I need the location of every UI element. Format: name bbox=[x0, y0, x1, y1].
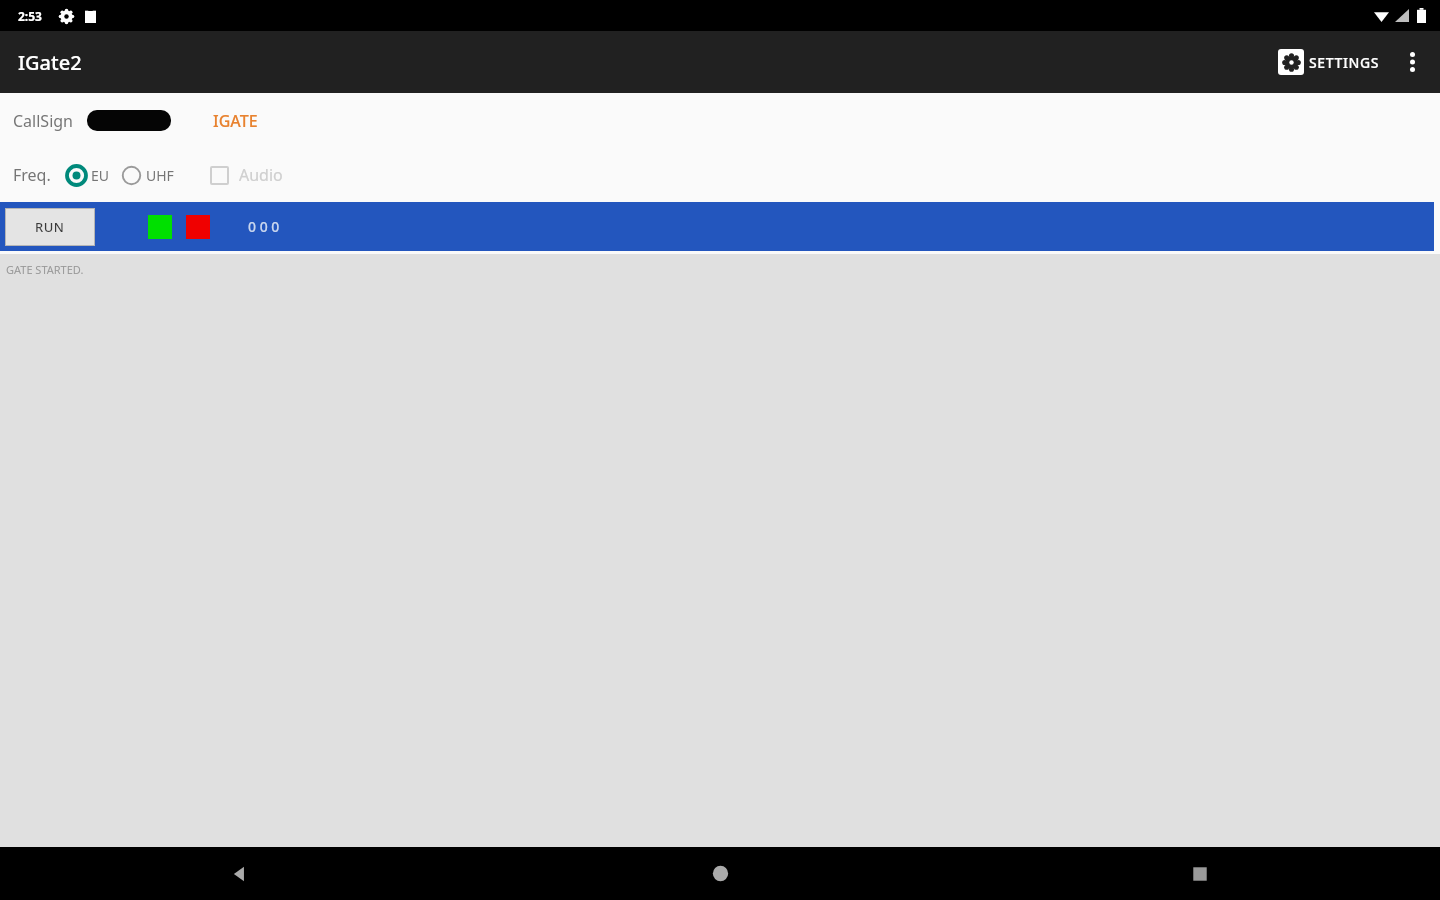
staticText: CallSign bbox=[13, 110, 73, 132]
staticText: 0 0 0 bbox=[248, 217, 280, 236]
staticText: 2:53 bbox=[18, 8, 42, 24]
button[interactable]: EU bbox=[65, 162, 112, 189]
staticText: UHF bbox=[146, 166, 174, 185]
staticText: RUN bbox=[35, 218, 65, 236]
staticText: GATE STARTED. bbox=[6, 262, 84, 277]
staticText: Audio bbox=[239, 164, 283, 186]
button[interactable]: Audio bbox=[206, 160, 287, 190]
button[interactable]: Home bbox=[480, 847, 960, 900]
button[interactable]: Back bbox=[0, 847, 480, 900]
button[interactable]: Recents bbox=[960, 847, 1440, 900]
staticText: IGate2 bbox=[18, 49, 82, 76]
button[interactable]: UHF bbox=[120, 162, 176, 189]
button[interactable]: SETTINGS bbox=[1274, 43, 1384, 81]
button[interactable]: More options bbox=[1392, 42, 1432, 82]
button[interactable] bbox=[87, 110, 171, 131]
button[interactable]: RUN bbox=[5, 208, 95, 246]
staticText: EU bbox=[91, 166, 110, 185]
staticText: Freq. bbox=[13, 164, 51, 186]
staticText: IGATE bbox=[213, 110, 258, 132]
staticText: SETTINGS bbox=[1309, 53, 1380, 72]
